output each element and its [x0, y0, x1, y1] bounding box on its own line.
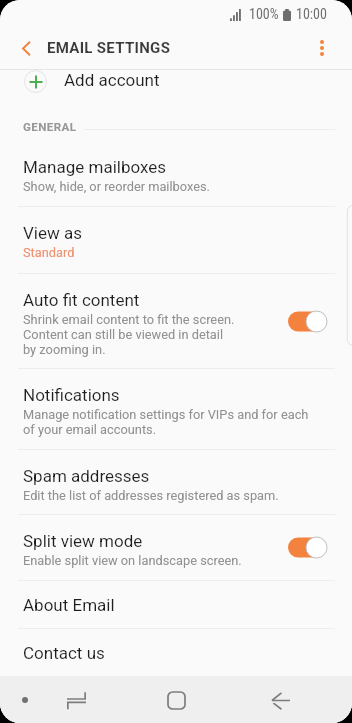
staticText: Edit the list of addresses registered as…: [23, 488, 279, 503]
button[interactable]: Contact us: [0, 629, 352, 676]
staticText: Spam addresses: [23, 466, 150, 486]
button[interactable]: Back: [260, 680, 300, 720]
button[interactable]: View as: [0, 207, 352, 273]
staticText: Manage mailboxes: [23, 157, 167, 177]
staticText: About Email: [23, 595, 115, 615]
button[interactable]: Toggle Split view mode: [288, 537, 327, 558]
staticText: Notifications: [23, 385, 120, 405]
button[interactable]: Manage mailboxes: [0, 141, 352, 206]
button[interactable]: Home: [156, 680, 196, 720]
button[interactable]: Recent apps: [56, 680, 96, 720]
button[interactable]: Toggle Auto fit content: [288, 311, 327, 332]
staticText: Standard: [23, 245, 75, 260]
button[interactable]: More options: [300, 28, 344, 69]
button[interactable]: About Email: [0, 581, 352, 628]
button[interactable]: Add account: [0, 70, 352, 94]
staticText: Auto fit content: [23, 290, 140, 310]
button[interactable]: Auto fit content: [0, 274, 352, 368]
staticText: Contact us: [23, 643, 105, 663]
staticText: Add account: [64, 70, 160, 90]
staticText: Show, hide, or reorder mailboxes.: [23, 179, 210, 194]
staticText: Shrink email content to fit the screen. …: [23, 312, 235, 357]
button[interactable]: Navigate up: [2, 28, 50, 69]
staticText: View as: [23, 223, 82, 243]
staticText: Manage notification settings for VIPs an…: [23, 407, 309, 437]
button[interactable]: Spam addresses: [0, 450, 352, 514]
staticText: Split view mode: [23, 531, 143, 551]
button[interactable]: Notifications: [0, 369, 352, 449]
staticText: 100%: [249, 6, 279, 22]
staticText: 10:00: [296, 6, 327, 22]
button[interactable]: Split view mode: [0, 515, 352, 580]
staticText: EMAIL SETTINGS: [47, 39, 171, 57]
staticText: Enable split view on landscape screen.: [23, 553, 242, 568]
staticText: GENERAL: [23, 120, 77, 134]
